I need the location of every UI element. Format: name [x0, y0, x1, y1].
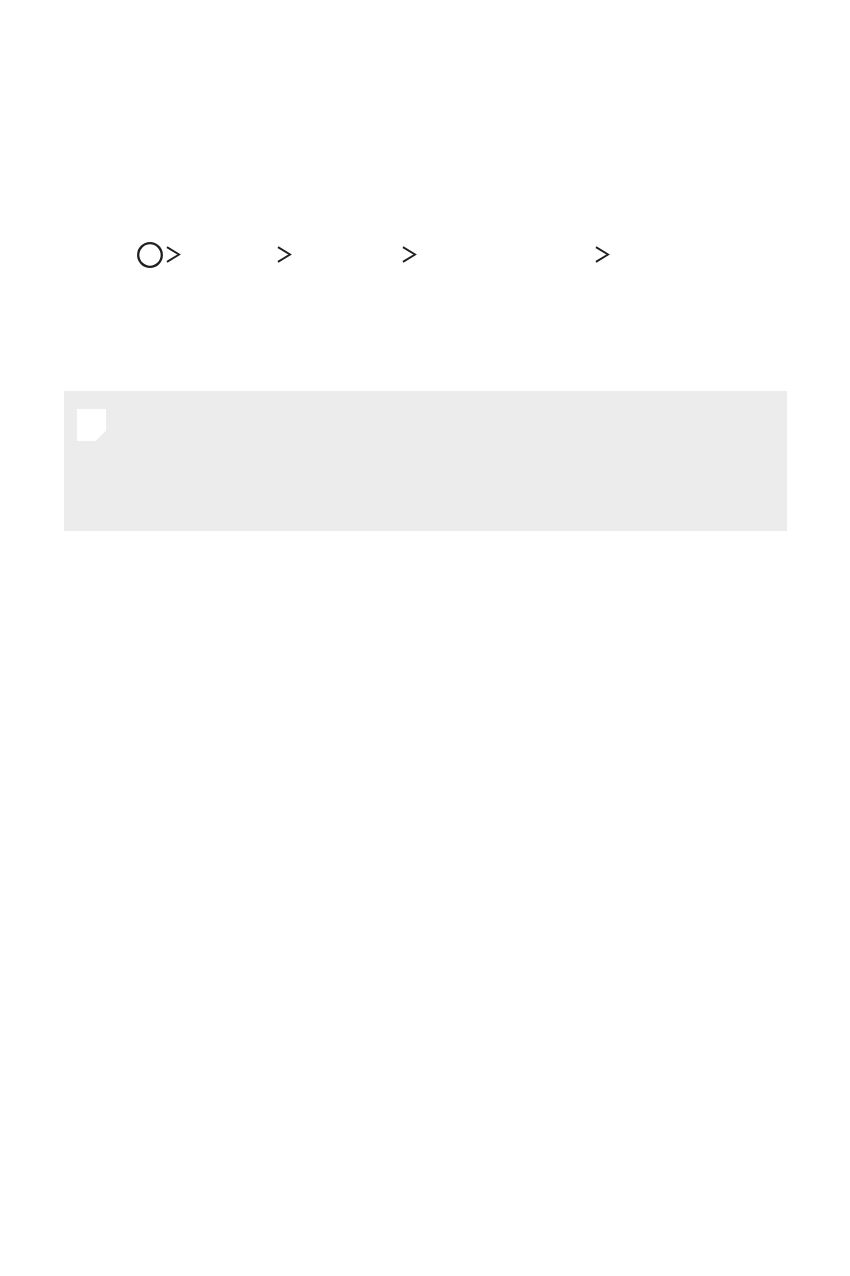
other: Note: [77, 409, 106, 441]
button[interactable]: Home: [137, 242, 163, 268]
